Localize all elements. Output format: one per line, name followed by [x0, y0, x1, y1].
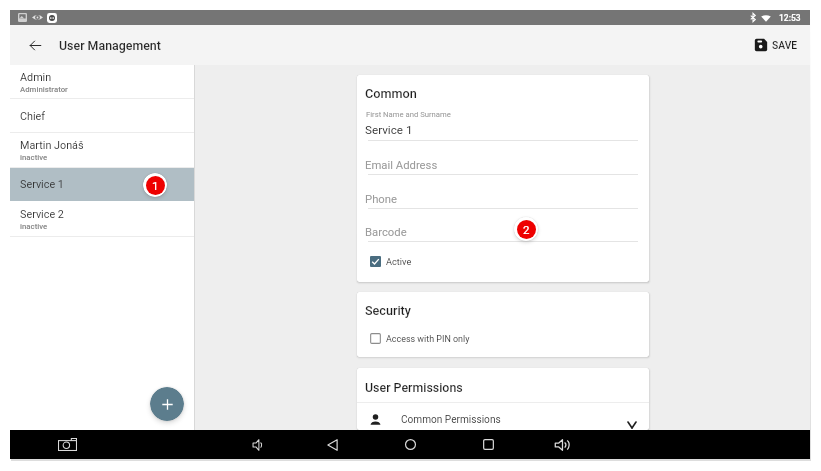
button[interactable]: Service 2	[10, 201, 194, 237]
staticText: Email Address	[365, 159, 438, 172]
staticText: User Management	[59, 38, 161, 53]
staticText: 12:53	[779, 13, 801, 23]
button[interactable]: Service 1	[10, 168, 194, 201]
button[interactable]: SAVE	[744, 30, 808, 60]
staticText: Admin	[20, 71, 52, 84]
staticText: Common	[365, 86, 417, 101]
button[interactable]: Chief	[10, 99, 194, 133]
staticText: Common Permissions	[401, 414, 501, 426]
staticText: Administrator	[20, 85, 68, 94]
staticText: Service 1	[365, 123, 413, 137]
staticText: Security	[365, 303, 411, 318]
button[interactable]: Active	[370, 256, 412, 267]
staticText: SAVE	[772, 39, 798, 51]
button[interactable]: Volume down	[244, 430, 273, 459]
staticText: inactive	[20, 153, 48, 162]
staticText: 2	[523, 223, 530, 236]
button[interactable]: Add user	[150, 387, 184, 421]
button[interactable]: Volume up	[547, 430, 576, 459]
staticText: 1	[152, 179, 159, 192]
button[interactable]: Back	[318, 430, 347, 459]
staticText: Martin Jonáš	[20, 139, 84, 152]
staticText: Phone	[365, 193, 398, 206]
button[interactable]: Martin Jonáš	[10, 133, 194, 168]
button[interactable]: Barcode	[365, 226, 407, 239]
button[interactable]: Screenshot	[53, 430, 82, 459]
button[interactable]: Home	[396, 430, 425, 459]
staticText: inactive	[20, 222, 48, 231]
staticText: User Permissions	[365, 380, 463, 395]
button[interactable]: Phone	[365, 193, 398, 206]
staticText: Barcode	[365, 226, 407, 239]
staticText: Service 2	[20, 208, 64, 221]
button[interactable]: Common Permissions	[357, 403, 649, 430]
staticText: Active	[386, 256, 412, 267]
staticText: Access with PIN only	[386, 334, 470, 344]
staticText: First Name and Surname	[366, 110, 451, 119]
button[interactable]: Access with PIN only	[370, 333, 470, 344]
button[interactable]: Admin	[10, 66, 194, 99]
staticText: Service 1	[20, 178, 64, 191]
button[interactable]: Back	[16, 26, 54, 64]
button[interactable]: Email Address	[365, 159, 438, 172]
staticText: Chief	[20, 110, 46, 123]
button[interactable]: Recents	[474, 430, 503, 459]
